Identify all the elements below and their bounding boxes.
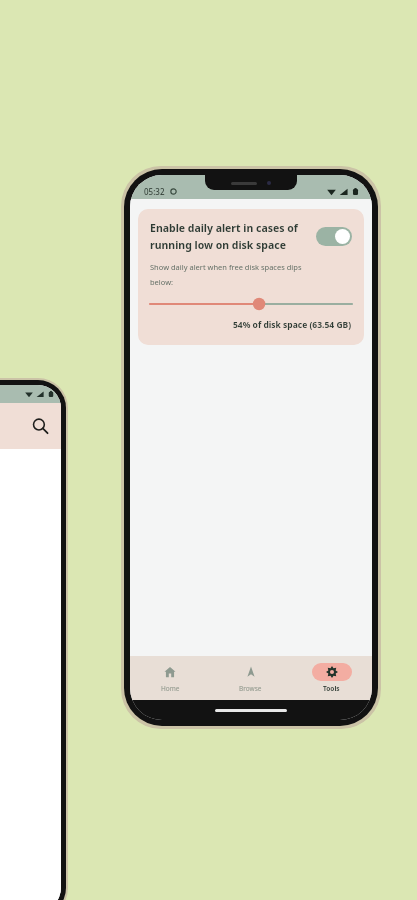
button[interactable]: Disk space threshold slider xyxy=(150,297,352,311)
staticText: 54% of disk space (63.54 GB) xyxy=(233,319,352,331)
staticText: running low on disk space xyxy=(150,238,286,252)
staticText: Enable daily alert in cases of xyxy=(150,221,298,235)
button[interactable]: Search xyxy=(31,417,49,435)
button[interactable]: Toggle daily alert xyxy=(316,227,352,246)
staticText: below: xyxy=(150,277,174,287)
button[interactable]: Tools xyxy=(291,656,372,700)
button[interactable]: Enable daily alert in cases of xyxy=(138,209,364,345)
button[interactable]: Home xyxy=(130,656,210,700)
staticText: 05:32 xyxy=(144,186,165,197)
staticText: Show daily alert when free disk spaces d… xyxy=(150,262,302,272)
staticText: Browse xyxy=(239,684,262,693)
staticText: Tools xyxy=(323,684,340,693)
staticText: Home xyxy=(161,684,180,693)
button[interactable]: Browse xyxy=(210,656,291,700)
